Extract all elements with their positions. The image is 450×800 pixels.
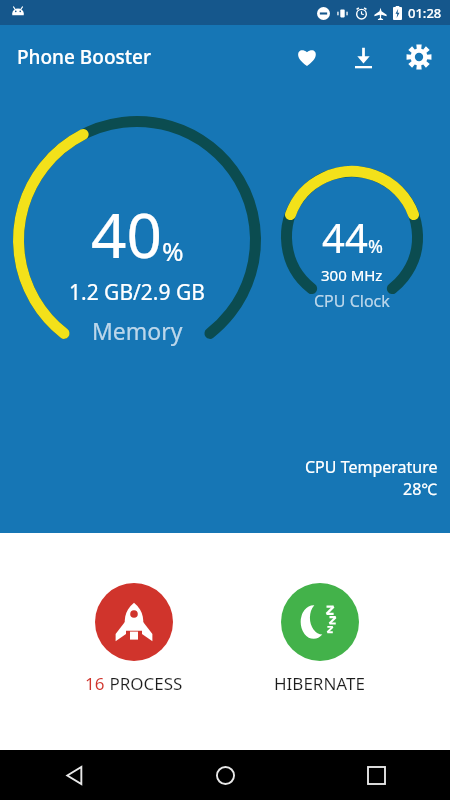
staticText: HIBERNATE (274, 672, 365, 695)
button[interactable]: 16 (79, 577, 189, 701)
staticText: CPU Temperature (305, 456, 438, 478)
staticText: % (368, 234, 383, 259)
staticText: PROCESS (105, 672, 183, 695)
staticText: 300 MHz (321, 265, 383, 285)
button[interactable]: Settings (402, 40, 436, 74)
staticText: 01:28 (408, 4, 442, 22)
staticText: 44 (322, 210, 368, 264)
button[interactable]: Download (346, 40, 380, 74)
staticText: 40 (91, 192, 162, 276)
staticText: CPU Clock (314, 290, 390, 308)
staticText: 28℃ (403, 478, 438, 500)
staticText: % (162, 233, 184, 268)
button[interactable]: Favorite (290, 40, 324, 74)
staticText: 16 (85, 672, 105, 695)
button[interactable]: HIBERNATE (268, 577, 371, 701)
staticText: 1.2 GB/2.9 GB (69, 278, 205, 307)
button[interactable]: Home (203, 753, 247, 797)
staticText: Phone Booster (17, 44, 151, 70)
staticText: Memory (92, 315, 183, 346)
button[interactable]: Recent apps (354, 753, 398, 797)
button[interactable]: Back (52, 753, 96, 797)
